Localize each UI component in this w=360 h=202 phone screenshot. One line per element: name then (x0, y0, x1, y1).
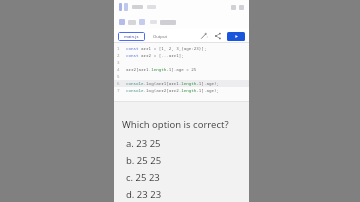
button[interactable]: Run (227, 32, 245, 41)
button[interactable]: main.js (118, 32, 145, 41)
staticText: const arr2 = [...arr1]; (126, 53, 184, 59)
staticText: 4 (117, 67, 120, 73)
button[interactable]: a. 23 25 (126, 137, 243, 150)
staticText: Output (153, 34, 168, 40)
staticText: console.log(arr1[arr1.length-1].age); (126, 81, 219, 87)
staticText: arr2[arr1.length-1].age = 25 (126, 67, 197, 73)
button[interactable]: Format code (199, 31, 209, 41)
button[interactable]: d. 23 23 (126, 188, 243, 200)
staticText: c. 25 23 (126, 171, 160, 184)
staticText: b. 25 25 (126, 154, 162, 167)
staticText: 7 (117, 88, 120, 94)
button[interactable]: Share (213, 31, 223, 41)
staticText: 1 (117, 46, 120, 52)
staticText: 6 (117, 81, 120, 87)
staticText: 5 (117, 74, 120, 80)
button[interactable]: c. 25 23 (126, 171, 243, 184)
staticText: a. 23 25 (126, 137, 161, 150)
other: Format code (200, 32, 208, 40)
staticText: Which option is correct? (122, 118, 229, 131)
other: Share (214, 32, 222, 40)
staticText: d. 23 23 (126, 188, 162, 200)
staticText: 2 (117, 53, 120, 59)
button[interactable]: Output (148, 32, 172, 41)
staticText: const arr1 = [1, 2, 3,{age:23}]; (126, 46, 207, 52)
staticText: main.js (124, 34, 139, 40)
staticText: console.log(arr2[arr2.length-1].age); (126, 88, 219, 94)
button[interactable]: b. 25 25 (126, 154, 243, 167)
staticText: 3 (117, 60, 120, 66)
